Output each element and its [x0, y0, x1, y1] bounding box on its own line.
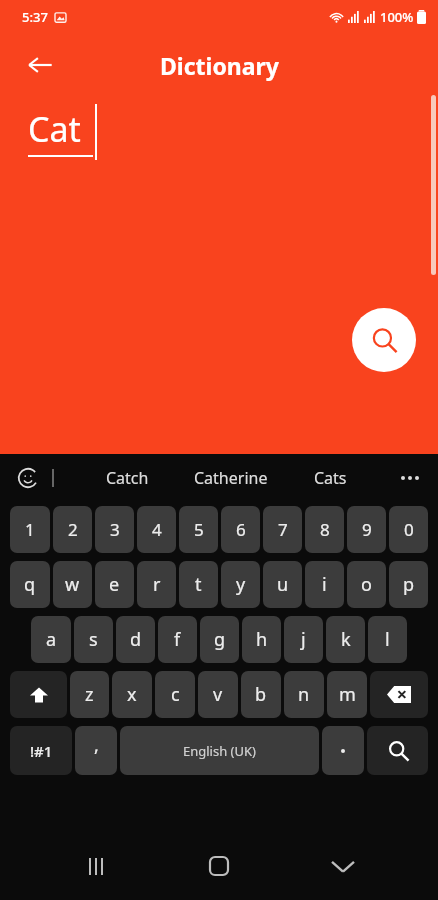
staticText: ,: [94, 733, 99, 758]
button[interactable]: Shift: [10, 671, 67, 718]
button[interactable]: English (UK): [120, 726, 319, 775]
button[interactable]: y: [221, 561, 260, 608]
button[interactable]: z: [70, 671, 109, 718]
button[interactable]: Catch: [100, 459, 155, 497]
button[interactable]: b: [241, 671, 281, 718]
button[interactable]: Recents: [68, 838, 124, 894]
button[interactable]: Catherine: [188, 459, 274, 497]
staticText: z: [85, 682, 94, 707]
staticText: k: [341, 627, 351, 652]
button[interactable]: t: [179, 561, 218, 608]
staticText: v: [213, 682, 223, 707]
staticText: d: [130, 627, 142, 652]
staticText: r: [153, 572, 161, 597]
button[interactable]: k: [326, 616, 365, 663]
staticText: l: [385, 627, 390, 652]
button[interactable]: 2: [53, 506, 92, 553]
staticText: f: [174, 627, 181, 652]
staticText: t: [195, 572, 202, 597]
button[interactable]: j: [284, 616, 323, 663]
staticText: Catch: [106, 467, 149, 489]
button[interactable]: g: [200, 616, 239, 663]
staticText: Catherine: [194, 467, 268, 489]
button[interactable]: 5: [179, 506, 218, 553]
staticText: u: [277, 572, 289, 597]
button[interactable]: 9: [347, 506, 386, 553]
button[interactable]: x: [112, 671, 152, 718]
button[interactable]: q: [10, 561, 50, 608]
button[interactable]: u: [263, 561, 302, 608]
button[interactable]: 8: [305, 506, 344, 553]
button[interactable]: c: [155, 671, 195, 718]
staticText: g: [214, 627, 226, 652]
staticText: p: [403, 572, 415, 597]
button[interactable]: f: [158, 616, 197, 663]
button[interactable]: h: [242, 616, 281, 663]
staticText: i: [322, 572, 327, 597]
staticText: a: [46, 627, 57, 652]
staticText: 8: [320, 518, 330, 541]
button[interactable]: w: [53, 561, 92, 608]
staticText: 7: [278, 518, 288, 541]
button[interactable]: Search: [367, 726, 428, 775]
staticText: h: [256, 627, 268, 652]
staticText: 1: [25, 518, 35, 541]
button[interactable]: m: [327, 671, 367, 718]
button[interactable]: Hide keyboard: [315, 838, 371, 894]
staticText: 0: [404, 518, 414, 541]
button[interactable]: 6: [221, 506, 260, 553]
staticText: 100%: [380, 8, 414, 26]
staticText: Cat: [28, 106, 81, 152]
staticText: 9: [362, 518, 372, 541]
button[interactable]: Back: [16, 41, 64, 89]
staticText: 5: [194, 518, 204, 541]
staticText: 4: [152, 518, 162, 541]
button[interactable]: 0: [389, 506, 428, 553]
button[interactable]: i: [305, 561, 344, 608]
staticText: b: [255, 682, 267, 707]
staticText: 6: [236, 518, 246, 541]
staticText: s: [89, 627, 98, 652]
staticText: y: [236, 572, 246, 597]
staticText: 2: [68, 518, 78, 541]
staticText: English (UK): [183, 742, 256, 760]
button[interactable]: n: [284, 671, 324, 718]
staticText: x: [127, 682, 137, 707]
staticText: Dictionary: [160, 50, 279, 81]
button[interactable]: d: [116, 616, 155, 663]
button[interactable]: Home: [191, 838, 247, 894]
button[interactable]: l: [368, 616, 407, 663]
button[interactable]: Search: [352, 308, 416, 372]
button[interactable]: 7: [263, 506, 302, 553]
button[interactable]: o: [347, 561, 386, 608]
button[interactable]: e: [95, 561, 134, 608]
staticText: w: [65, 572, 80, 597]
staticText: m: [339, 682, 356, 707]
button[interactable]: Cats: [308, 459, 353, 497]
staticText: j: [301, 627, 306, 652]
staticText: 5:37: [22, 8, 48, 26]
button[interactable]: 4: [137, 506, 176, 553]
button[interactable]: Emoji: [12, 462, 44, 494]
staticText: c: [171, 682, 180, 707]
staticText: q: [24, 572, 36, 597]
staticText: 3: [110, 518, 120, 541]
button[interactable]: 1: [10, 506, 50, 553]
button[interactable]: [322, 726, 364, 775]
button[interactable]: Backspace: [370, 671, 428, 718]
button[interactable]: r: [137, 561, 176, 608]
staticText: n: [298, 682, 310, 707]
button[interactable]: s: [74, 616, 113, 663]
button[interactable]: 3: [95, 506, 134, 553]
staticText: !#1: [30, 741, 53, 761]
button[interactable]: p: [389, 561, 428, 608]
staticText: o: [361, 572, 372, 597]
button[interactable]: a: [31, 616, 71, 663]
button[interactable]: v: [198, 671, 238, 718]
staticText: e: [109, 572, 120, 597]
button[interactable]: More options: [394, 462, 426, 494]
button[interactable]: !#1: [10, 726, 72, 775]
staticText: Cats: [314, 467, 347, 489]
button[interactable]: ,: [75, 726, 117, 775]
